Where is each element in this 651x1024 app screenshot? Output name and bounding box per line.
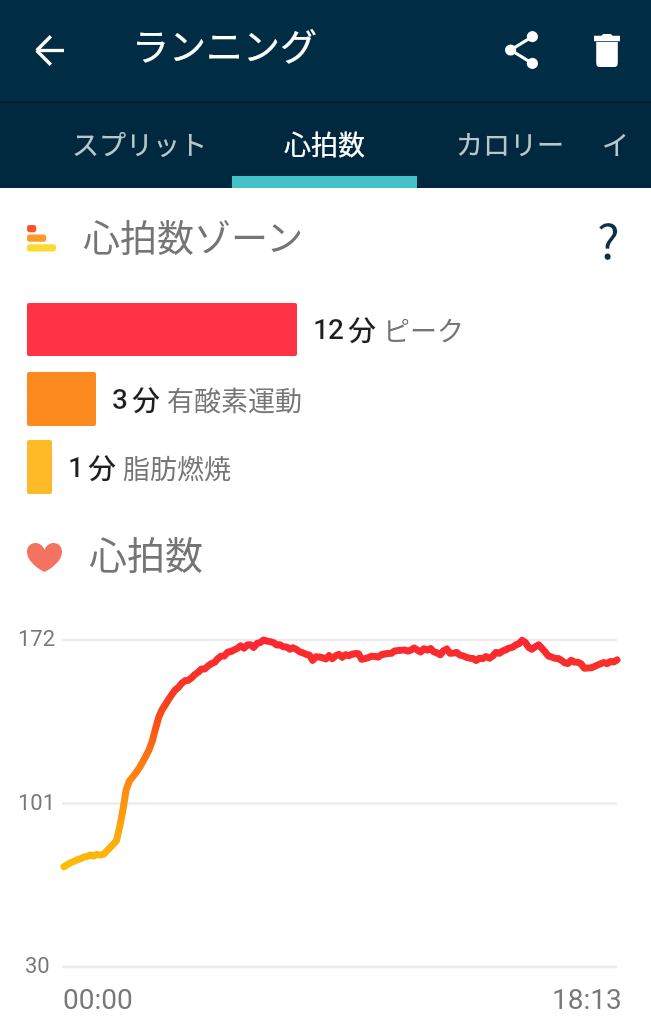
staticText: 1 — [68, 451, 84, 484]
staticText: 30 — [25, 953, 50, 979]
staticText: 分 — [348, 309, 377, 350]
staticText: ピーク — [383, 310, 464, 349]
staticText: 心拍数ゾーン — [83, 209, 304, 263]
button[interactable]: Back — [14, 15, 84, 85]
staticText: 18:13 — [552, 983, 622, 1016]
staticText: 12 — [313, 313, 344, 346]
staticText: インターバル — [602, 124, 651, 163]
button[interactable]: 心拍数 — [232, 101, 417, 188]
staticText: 有酸素運動 — [167, 380, 302, 419]
staticText: カロリー — [456, 124, 564, 163]
button[interactable]: インターバル — [602, 101, 651, 188]
staticText: 00:00 — [63, 983, 133, 1016]
staticText: ランニング — [132, 18, 317, 72]
staticText: ? — [597, 203, 620, 273]
staticText: 101 — [18, 790, 56, 816]
staticText: 3 — [112, 383, 128, 416]
staticText: 分 — [132, 379, 161, 420]
button[interactable]: Delete — [572, 15, 642, 85]
staticText: 心拍数 — [89, 525, 204, 580]
staticText: 172 — [18, 626, 56, 652]
button[interactable]: スプリット — [47, 101, 232, 188]
button[interactable]: カロリー — [417, 101, 602, 188]
button[interactable]: Share — [486, 15, 556, 85]
staticText: 心拍数 — [284, 124, 365, 163]
button[interactable]: 心拍数 — [0, 519, 651, 585]
staticText: 脂肪燃焼 — [123, 448, 231, 487]
staticText: 分 — [88, 447, 117, 488]
staticText: スプリット — [72, 124, 207, 163]
button[interactable]: Help — [573, 201, 643, 271]
button[interactable]: 心拍数ゾーン — [0, 188, 651, 284]
